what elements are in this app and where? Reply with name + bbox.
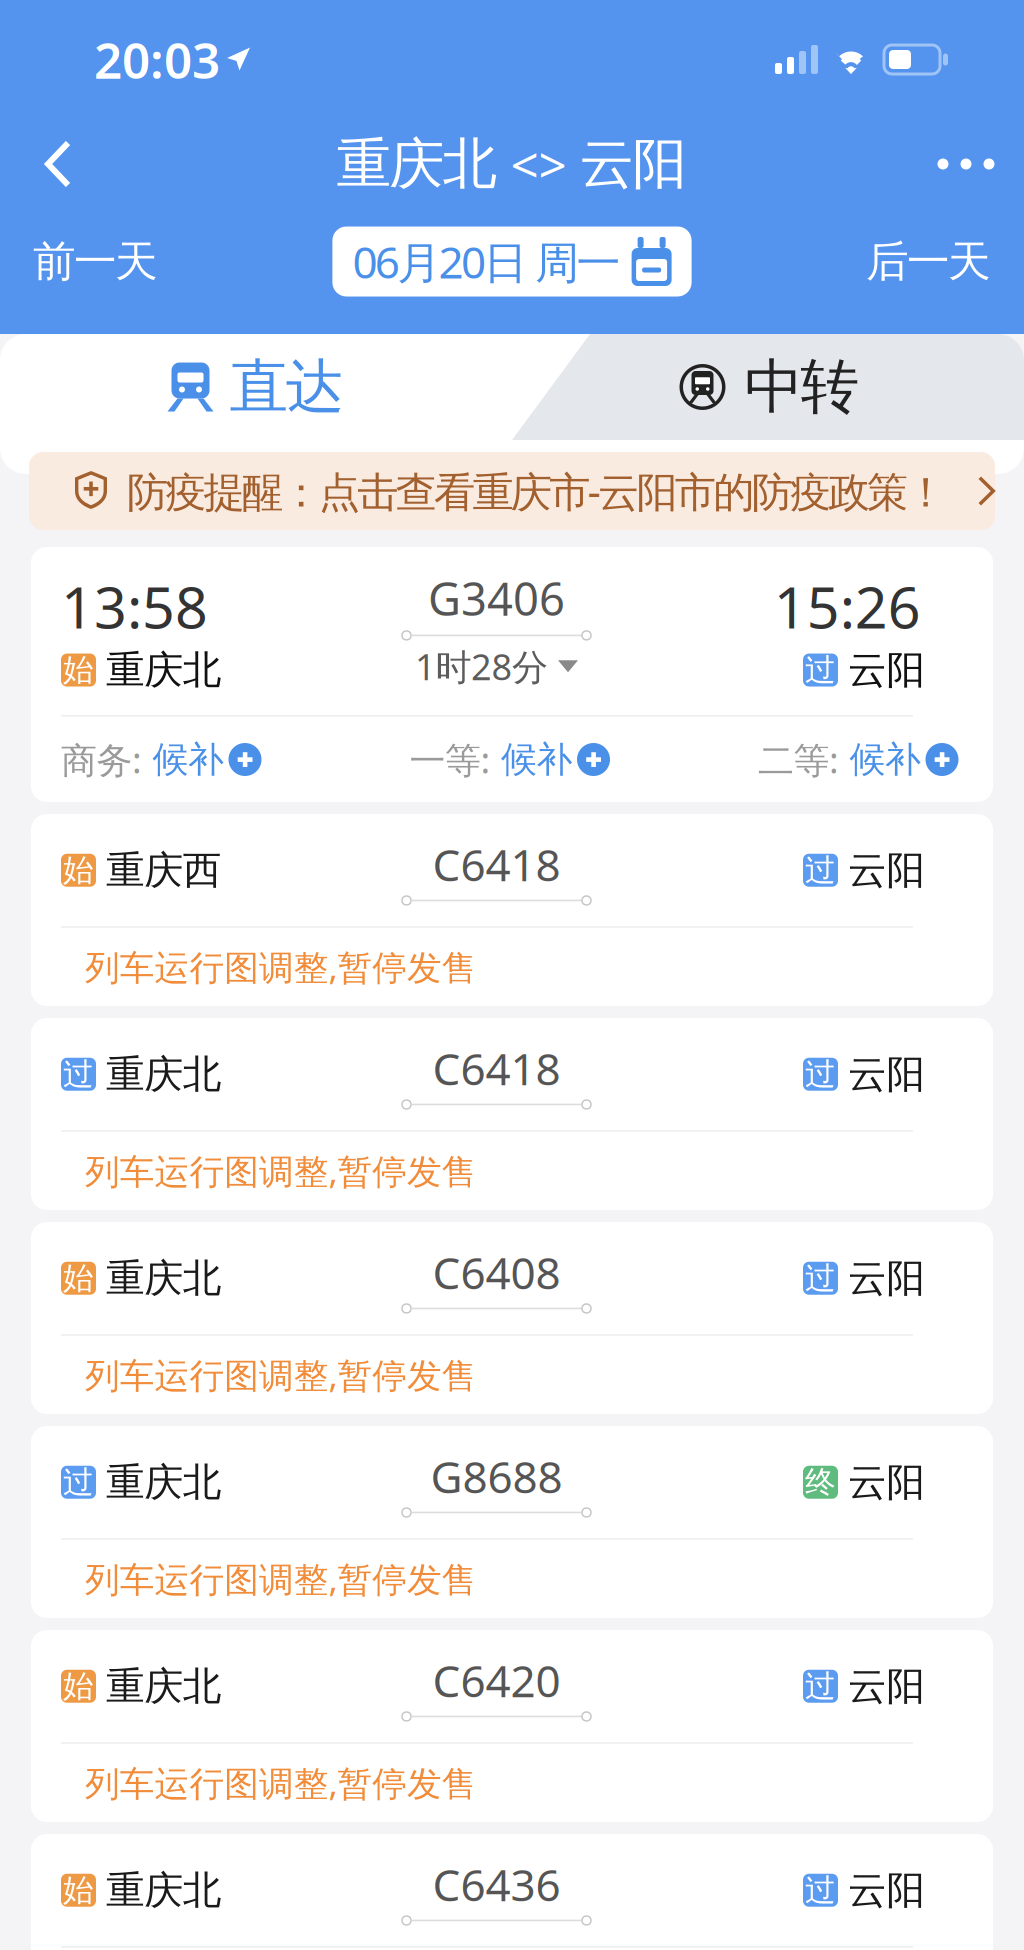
staticText: 候补 [142, 737, 224, 782]
button[interactable]: 直达 [0, 334, 512, 440]
staticText: C6418 [432, 1039, 560, 1097]
staticText: 过 [805, 851, 836, 889]
staticText: 列车运行图调整,暂停发售 [85, 1352, 477, 1398]
staticText: 重庆西 [106, 846, 222, 894]
staticText: 云阳 [848, 1866, 925, 1914]
staticText: C6418 [432, 835, 560, 893]
staticText: 过 [63, 1055, 94, 1093]
staticText: 候补 [490, 737, 572, 782]
button[interactable]: 始 [31, 1630, 993, 1822]
button[interactable]: Back [8, 120, 108, 208]
button[interactable]: 13:58 [31, 547, 993, 802]
button[interactable]: 前一天 [0, 223, 191, 299]
button[interactable]: 商务: [61, 736, 266, 782]
staticText: 重庆北 [106, 1254, 222, 1302]
staticText: 始 [63, 651, 94, 689]
button[interactable]: 防疫提醒：点击查看重庆市-云阳市的防疫政策！ [29, 452, 995, 530]
staticText: 列车运行图调整,暂停发售 [85, 1148, 477, 1194]
button[interactable]: 二等: [758, 736, 963, 782]
staticText: > [538, 131, 579, 197]
staticText: 始 [63, 1871, 94, 1909]
staticText: 云阳 [848, 1662, 925, 1710]
button[interactable]: 始 [31, 1834, 993, 1950]
staticText: 后一天 [866, 235, 991, 288]
staticText: G3406 [428, 568, 565, 628]
staticText: 15:26 [774, 568, 921, 644]
staticText: 重庆北 [106, 1050, 222, 1098]
staticText: 重庆北 [106, 646, 222, 694]
button[interactable]: 06月20日 周一 [332, 226, 692, 296]
staticText: 过 [805, 651, 836, 689]
staticText: 列车运行图调整,暂停发售 [85, 1760, 477, 1806]
staticText: 过 [805, 1667, 836, 1705]
button[interactable]: 过 [31, 1018, 993, 1210]
staticText: 始 [63, 1259, 94, 1297]
staticText: 中转 [744, 351, 859, 423]
staticText: 防疫提醒：点击查看重庆市-云阳市的防疫政策！ [108, 464, 946, 518]
staticText: 云阳 [848, 646, 925, 694]
staticText: 候补 [839, 737, 921, 782]
staticText: 1时28分 [415, 642, 548, 690]
staticText: 重庆北 [336, 130, 497, 197]
staticText: 06月20日 周一 [352, 232, 621, 291]
staticText: 过 [805, 1871, 836, 1909]
button[interactable]: 始 [31, 1222, 993, 1414]
button[interactable]: 中转 [512, 334, 1024, 440]
staticText: 过 [805, 1259, 836, 1297]
staticText: 重庆北 [106, 1458, 222, 1506]
staticText: 商务: [61, 736, 142, 783]
button[interactable]: 一等: [409, 736, 614, 782]
staticText: 云阳 [848, 1458, 925, 1506]
staticText: 过 [805, 1055, 836, 1093]
button[interactable]: More options [916, 120, 1016, 208]
staticText: 13:58 [61, 568, 208, 644]
staticText: 始 [63, 851, 94, 889]
staticText: C6420 [432, 1651, 560, 1709]
staticText: 二等: [758, 736, 839, 783]
staticText: 列车运行图调整,暂停发售 [85, 944, 477, 990]
staticText: 云阳 [848, 846, 925, 894]
button[interactable]: 过 [31, 1426, 993, 1618]
staticText: 列车运行图调整,暂停发售 [85, 1556, 477, 1602]
staticText: 前一天 [33, 235, 158, 288]
staticText: C6436 [432, 1855, 560, 1913]
staticText: G8688 [430, 1447, 562, 1505]
staticText: 云阳 [848, 1050, 925, 1098]
staticText: 一等: [409, 736, 490, 783]
button[interactable]: 始 [31, 814, 993, 1006]
staticText: 20:03 [94, 27, 220, 92]
staticText: < [497, 131, 538, 197]
button[interactable]: 后一天 [833, 223, 1024, 299]
staticText: 过 [63, 1463, 94, 1501]
staticText: C6408 [432, 1243, 560, 1301]
staticText: 终 [805, 1463, 836, 1501]
staticText: 直达 [229, 351, 344, 423]
staticText: 始 [63, 1667, 94, 1705]
staticText: 重庆北 [106, 1866, 222, 1914]
staticText: 重庆北 [106, 1662, 222, 1710]
staticText: 云阳 [579, 130, 687, 197]
staticText: 云阳 [848, 1254, 925, 1302]
